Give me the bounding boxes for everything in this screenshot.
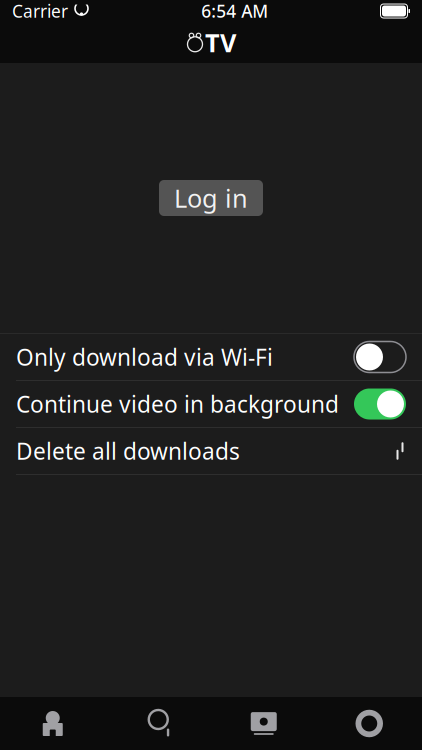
staticText: Only download via Wi-Fi xyxy=(16,342,273,372)
button[interactable]: Settings xyxy=(316,697,422,750)
button[interactable]: Delete all downloads xyxy=(0,428,422,474)
staticText: TV xyxy=(205,26,236,59)
staticText: Carrier xyxy=(12,0,68,22)
staticText: Delete all downloads xyxy=(16,436,240,466)
button[interactable]: Search xyxy=(105,697,211,750)
staticText: Log in xyxy=(174,181,248,215)
button[interactable]: Continue video in background xyxy=(0,381,422,427)
staticText: 6:54 AM xyxy=(201,0,268,22)
button[interactable]: Home xyxy=(0,697,105,750)
button[interactable]: Log in xyxy=(159,180,263,216)
staticText: Continue video in background xyxy=(16,389,339,419)
button[interactable]: Only download via Wi-Fi xyxy=(0,334,422,380)
button[interactable]: Videos xyxy=(211,697,316,750)
